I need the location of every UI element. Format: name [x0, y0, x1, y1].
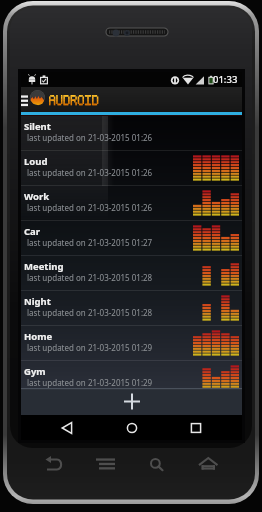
staticText: last updated on 21-03-2015 01:26: [27, 167, 153, 178]
button[interactable]: Gym: [21, 361, 242, 388]
staticText: Meeting: [24, 260, 64, 273]
button[interactable]: Work: [21, 186, 242, 220]
button[interactable]: Recent apps: [180, 415, 212, 440]
staticText: last updated on 21-03-2015 01:29: [27, 377, 153, 388]
staticText: 01:33: [213, 73, 238, 86]
button[interactable]: Loud: [21, 151, 242, 185]
button[interactable]: Silent: [21, 116, 242, 150]
staticText: last updated on 21-03-2015 01:29: [27, 342, 153, 353]
button[interactable]: Open navigation menu: [21, 87, 31, 112]
staticText: last updated on 21-03-2015 01:26: [27, 132, 153, 143]
button[interactable]: Back: [51, 415, 83, 440]
button[interactable]: Add profile: [21, 388, 242, 415]
staticText: Home: [24, 330, 53, 343]
button[interactable]: Home: [21, 326, 242, 360]
staticText: last updated on 21-03-2015 01:28: [27, 272, 153, 283]
staticText: last updated on 21-03-2015 01:26: [27, 202, 153, 213]
staticText: Loud: [24, 155, 48, 168]
button[interactable]: Night: [21, 291, 242, 325]
staticText: last updated on 21-03-2015 01:27: [27, 237, 153, 248]
staticText: Work: [24, 190, 50, 203]
staticText: Gym: [24, 365, 46, 378]
staticText: last updated on 21-03-2015 01:28: [27, 307, 153, 318]
staticText: Silent: [24, 120, 51, 133]
button[interactable]: Home: [116, 415, 148, 440]
staticText: Car: [24, 225, 41, 238]
staticText: Night: [24, 295, 51, 308]
button[interactable]: Meeting: [21, 256, 242, 290]
button[interactable]: Car: [21, 221, 242, 255]
